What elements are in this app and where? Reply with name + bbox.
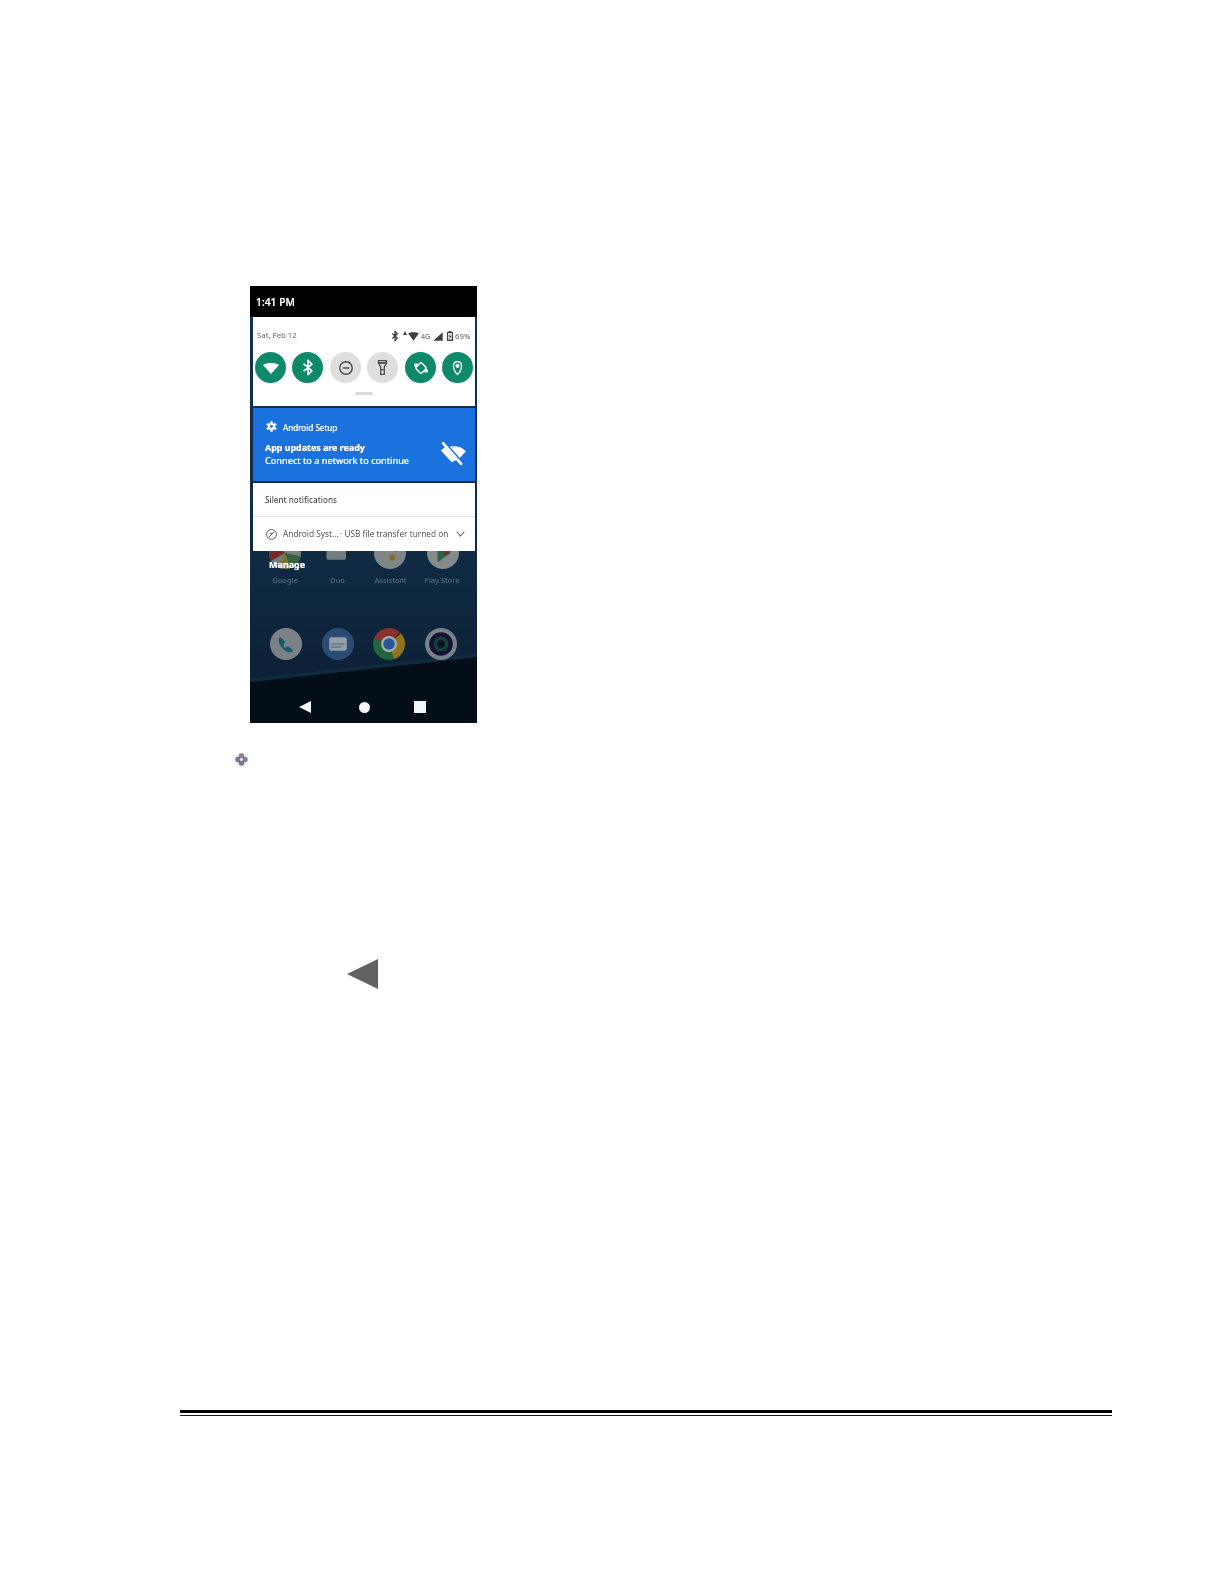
staticText: Silent notifications [265, 494, 337, 505]
staticText: Duo [330, 575, 345, 585]
button[interactable]: Manage [269, 558, 306, 570]
staticText: 1:41 PM [256, 295, 295, 309]
staticText: 4G [421, 331, 431, 341]
button[interactable]: Location [442, 352, 473, 383]
staticText: Play Store [424, 575, 460, 585]
button[interactable]: App [269, 537, 301, 569]
other: Expand [453, 527, 467, 541]
staticText: 69% [455, 331, 471, 342]
button[interactable]: App 1 [322, 628, 354, 660]
button[interactable]: App 0 [270, 628, 302, 660]
button[interactable]: Home [354, 697, 374, 717]
button[interactable]: Do not disturb [330, 352, 361, 383]
staticText: App updates are ready [265, 441, 365, 453]
button[interactable]: Bluetooth [292, 352, 323, 383]
staticText: Assistant [374, 575, 407, 585]
button[interactable]: Wi-Fi [255, 352, 286, 383]
staticText: Connect to a network to continue [265, 454, 410, 467]
button[interactable]: App [322, 537, 354, 569]
staticText: Android Syst… [283, 528, 339, 539]
button[interactable]: App 2 [373, 628, 405, 660]
button[interactable]: Flashlight [367, 352, 398, 383]
staticText: · USB file transfer turned on [340, 528, 449, 539]
button[interactable]: App [427, 537, 459, 569]
staticText: Sat, Feb 12 [257, 330, 297, 341]
staticText: Google [272, 575, 298, 585]
button[interactable]: App [374, 537, 406, 569]
button[interactable]: Recents [410, 697, 430, 717]
button[interactable]: Android Setup [253, 408, 475, 481]
button[interactable]: Auto-rotate [405, 352, 436, 383]
button[interactable]: Android Syst… [253, 517, 475, 551]
button[interactable]: Back [295, 697, 315, 717]
button[interactable]: Silent notifications [253, 483, 475, 516]
staticText: Android Setup [283, 422, 338, 433]
button[interactable]: App 3 [425, 628, 457, 660]
